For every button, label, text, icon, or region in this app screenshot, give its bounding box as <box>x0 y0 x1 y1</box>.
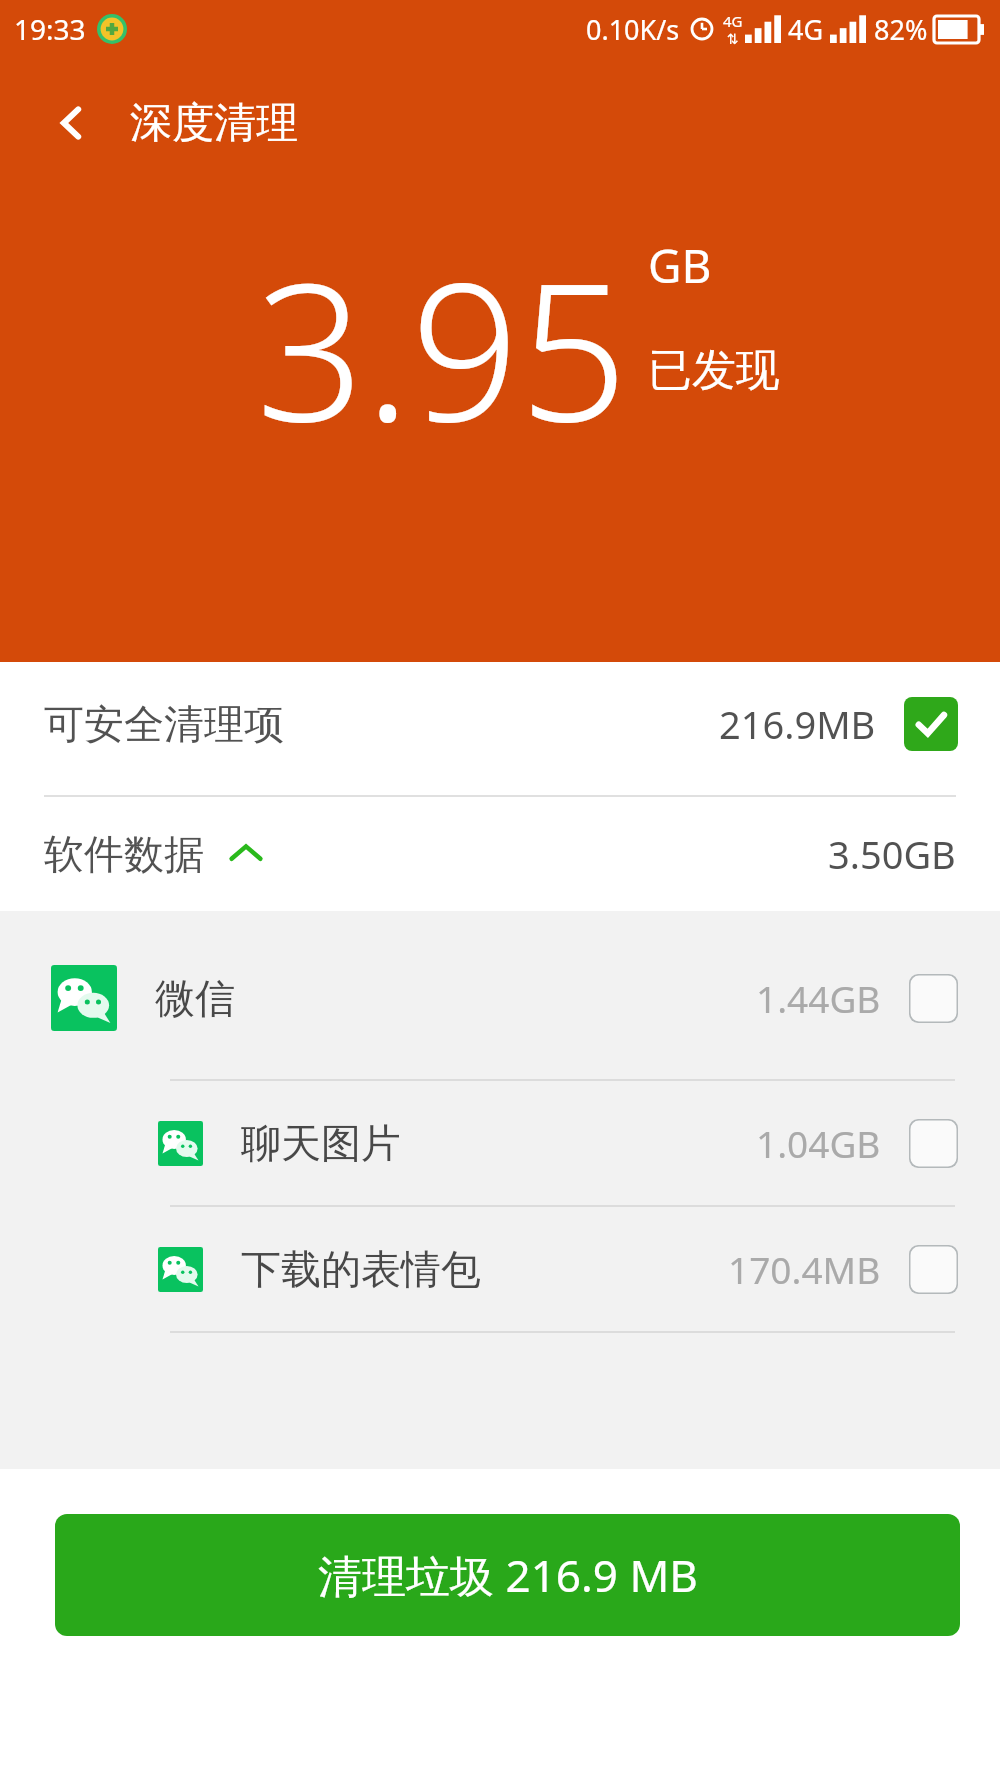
button[interactable]: 软件数据 <box>0 797 1000 911</box>
staticText: 216.9MB <box>719 698 876 750</box>
button[interactable]: 清理垃圾 216.9 MB <box>55 1514 960 1636</box>
button[interactable]: Back <box>40 92 102 154</box>
button[interactable]: 可安全清理项 <box>0 662 1000 785</box>
button[interactable]: Select 聊天图片 <box>909 1119 958 1168</box>
staticText: 清理垃圾 216.9 MB <box>318 1545 698 1605</box>
staticText: 可安全清理项 <box>44 699 284 749</box>
staticText: 微信 <box>155 973 235 1023</box>
button[interactable]: 聊天图片 <box>0 1118 1000 1168</box>
staticText: ⇅ <box>727 31 739 47</box>
staticText: 聊天图片 <box>241 1118 401 1168</box>
button[interactable]: Select 下载的表情包 <box>909 1245 958 1294</box>
button[interactable]: 微信 <box>0 965 1000 1031</box>
staticText: 已发现 <box>648 343 780 398</box>
staticText: GB <box>648 234 712 297</box>
staticText: 1.44GB <box>756 973 881 1023</box>
staticText: 软件数据 <box>44 829 204 879</box>
staticText: 0.10K/s <box>586 11 680 48</box>
staticText: 3.95 <box>256 218 628 477</box>
staticText: 3.50GB <box>828 828 956 880</box>
button[interactable]: 下载的表情包 <box>0 1244 1000 1294</box>
staticText: 170.4MB <box>728 1244 881 1294</box>
staticText: 19:33 <box>14 10 86 48</box>
staticText: 82% <box>874 11 928 48</box>
staticText: 下载的表情包 <box>241 1244 481 1294</box>
staticText: 1.04GB <box>756 1118 881 1168</box>
staticText: 深度清理 <box>130 97 298 150</box>
button[interactable]: Select 微信 <box>909 974 958 1023</box>
staticText: 4G <box>723 11 743 31</box>
staticText: 4G <box>788 11 824 48</box>
